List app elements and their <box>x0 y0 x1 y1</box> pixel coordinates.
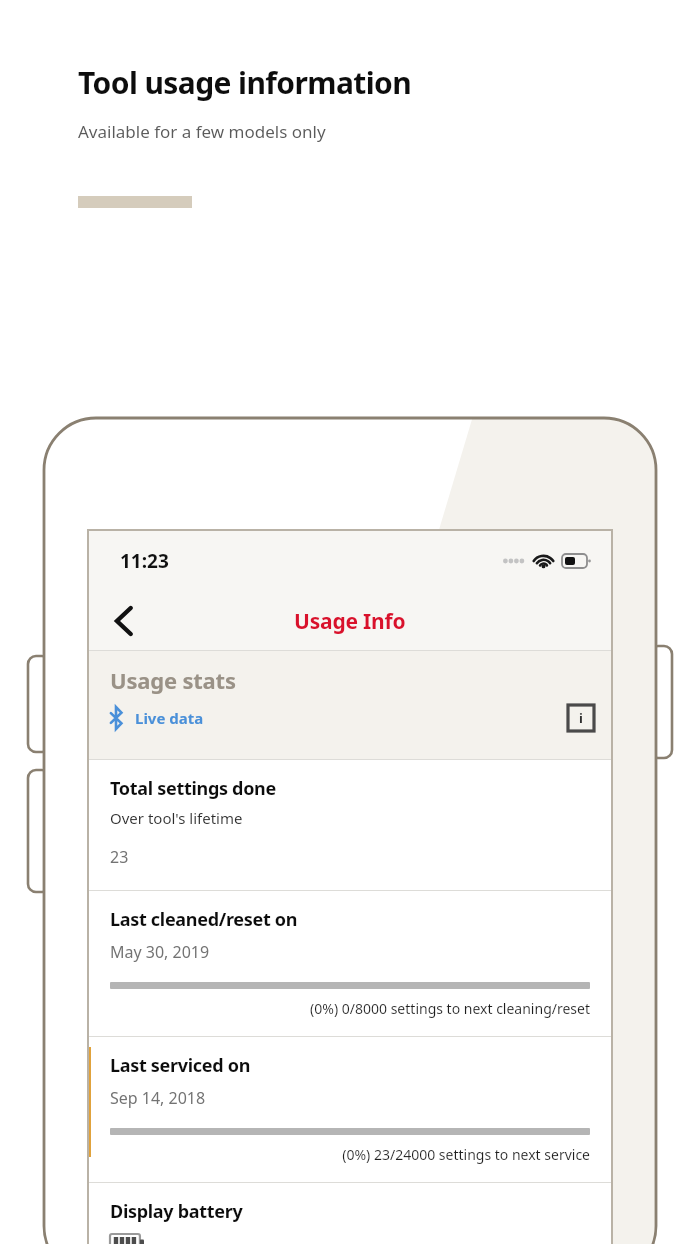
staticText: Sep 14, 2018 <box>110 1087 206 1109</box>
button[interactable]: Back <box>102 599 146 643</box>
staticText: Usage stats <box>110 665 236 695</box>
staticText: Live data <box>135 708 204 728</box>
staticText: (0%) 0/8000 settings to next cleaning/re… <box>110 999 590 1018</box>
button[interactable]: Information <box>568 705 594 731</box>
staticText: Last cleaned/reset on <box>110 907 298 932</box>
button[interactable]: Last cleaned/reset on <box>88 891 612 1036</box>
staticText: i <box>579 709 583 727</box>
staticText: Display battery <box>110 1199 243 1224</box>
staticText: Over tool's lifetime <box>110 808 243 828</box>
staticText: May 30, 2019 <box>110 941 210 963</box>
button[interactable]: Total settings done <box>88 760 612 890</box>
button[interactable]: Display battery <box>88 1183 612 1244</box>
staticText: Available for a few models only <box>78 120 326 143</box>
button[interactable]: Last serviced on <box>88 1037 612 1182</box>
staticText: 23 <box>110 846 129 868</box>
staticText: Total settings done <box>110 776 276 801</box>
staticText: Last serviced on <box>110 1053 251 1078</box>
staticText: (0%) 23/24000 settings to next service <box>110 1145 590 1164</box>
staticText: Usage Info <box>294 607 406 636</box>
staticText: Tool usage information <box>78 62 412 103</box>
staticText: 11:23 <box>120 548 169 574</box>
button[interactable]: Live data <box>108 707 204 729</box>
